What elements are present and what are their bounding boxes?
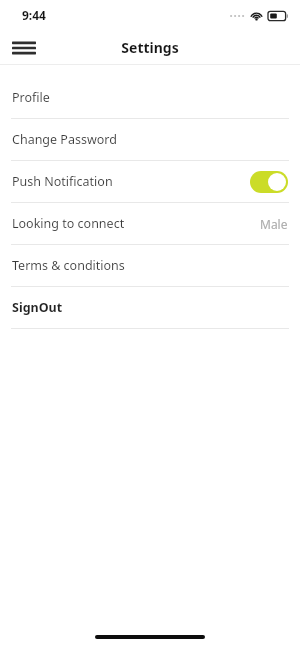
staticText: Looking to connect — [12, 215, 125, 232]
staticText: Male — [260, 216, 288, 232]
button[interactable]: SignOut — [0, 287, 300, 328]
staticText: Settings — [121, 38, 179, 57]
button[interactable]: Change Password — [0, 119, 300, 160]
staticText: Profile — [12, 89, 50, 106]
staticText: 9:44 — [22, 7, 46, 23]
button[interactable]: Push Notification — [0, 161, 300, 202]
button[interactable]: Profile — [0, 77, 300, 118]
staticText: SignOut — [12, 299, 63, 316]
button[interactable]: Terms & conditions — [0, 245, 300, 286]
staticText: Push Notification — [12, 173, 113, 190]
button[interactable]: Menu — [6, 30, 42, 65]
staticText: Terms & conditions — [12, 257, 125, 274]
staticText: Change Password — [12, 131, 117, 148]
button[interactable]: Push notification toggle — [250, 171, 288, 193]
button[interactable]: Looking to connect — [0, 203, 300, 244]
